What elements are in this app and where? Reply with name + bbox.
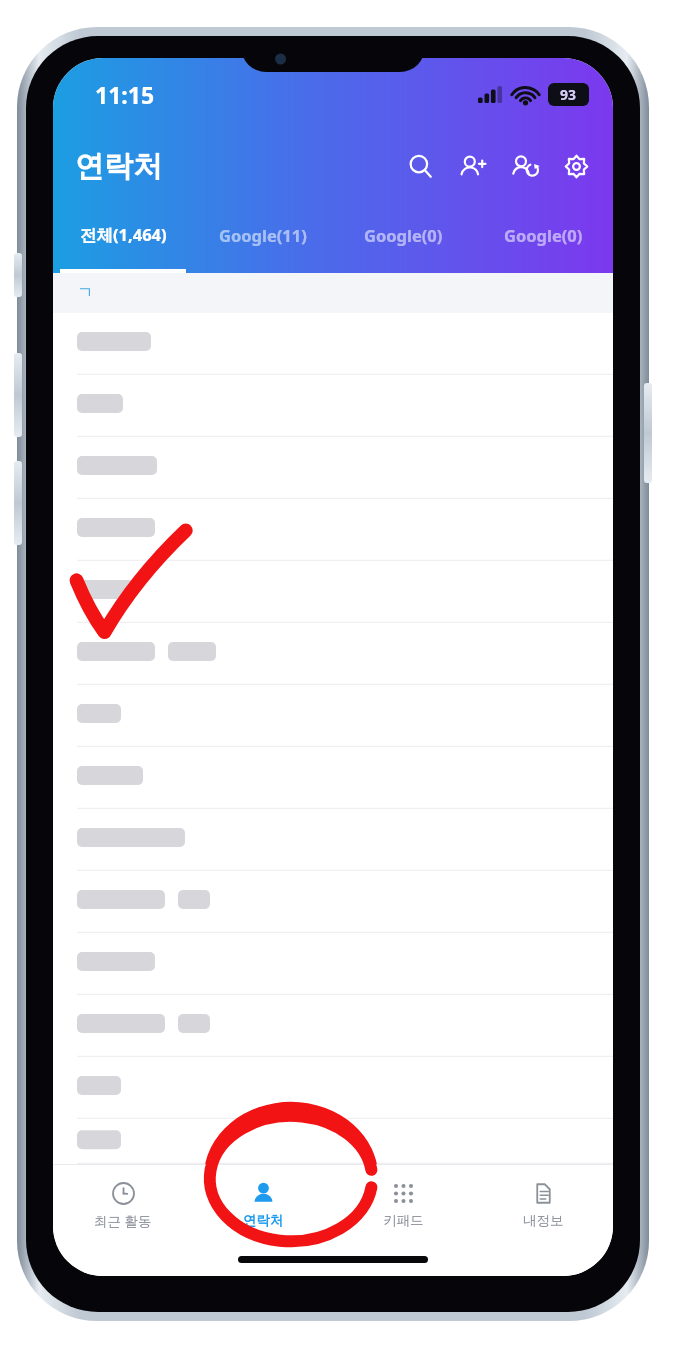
button[interactable]: Google(11) — [193, 208, 333, 273]
button[interactable] — [53, 809, 613, 871]
staticText: 연락처 — [75, 148, 162, 185]
button[interactable] — [53, 499, 613, 561]
button[interactable] — [53, 561, 613, 623]
staticText: Google(0) — [504, 224, 583, 246]
button[interactable] — [53, 623, 613, 685]
button[interactable]: Google(0) — [333, 208, 473, 273]
button[interactable] — [53, 747, 613, 809]
staticText: 전체(1,464) — [80, 223, 167, 246]
staticText: 11:15 — [95, 79, 155, 110]
staticText: ㄱ — [77, 283, 93, 303]
button[interactable] — [53, 375, 613, 437]
button[interactable]: 최근 활동 — [53, 1165, 193, 1245]
button[interactable]: Sync contacts — [503, 145, 545, 187]
button[interactable] — [53, 1119, 613, 1164]
button[interactable]: 내정보 — [473, 1165, 613, 1245]
staticText: 최근 활동 — [94, 1212, 152, 1230]
staticText: 연락처 — [243, 1212, 284, 1229]
button[interactable]: 키패드 — [333, 1165, 473, 1245]
button[interactable]: Add contact — [451, 145, 493, 187]
staticText: 키패드 — [383, 1212, 424, 1229]
button[interactable] — [53, 313, 613, 375]
button[interactable]: 전체(1,464) — [53, 208, 193, 273]
button[interactable]: Settings — [555, 145, 597, 187]
staticText: 93 — [560, 85, 577, 104]
button[interactable] — [53, 995, 613, 1057]
button[interactable]: ㄱ — [53, 273, 613, 313]
button[interactable] — [53, 685, 613, 747]
staticText: Google(0) — [364, 224, 443, 246]
button[interactable] — [53, 871, 613, 933]
staticText: 내정보 — [523, 1212, 564, 1229]
button[interactable] — [53, 437, 613, 499]
button[interactable] — [53, 933, 613, 995]
button[interactable]: 연락처 — [193, 1165, 333, 1245]
button[interactable]: Google(0) — [473, 208, 613, 273]
button[interactable] — [53, 1057, 613, 1119]
button[interactable]: Search — [399, 145, 441, 187]
staticText: Google(11) — [219, 224, 307, 246]
